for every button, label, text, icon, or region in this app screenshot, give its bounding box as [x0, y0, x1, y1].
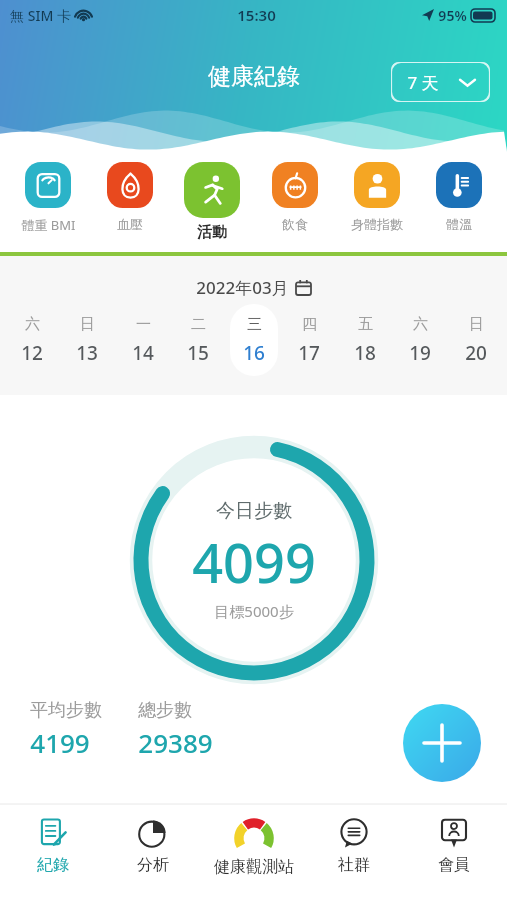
staticText: 日 — [469, 315, 484, 334]
staticText: 7 天 — [407, 71, 439, 94]
button[interactable]: 會員 — [407, 818, 501, 875]
button[interactable]: 六 — [8, 304, 56, 376]
staticText: 15 — [187, 340, 209, 366]
button[interactable]: 體重 BMI — [8, 162, 88, 234]
button[interactable]: 血壓 — [90, 162, 170, 232]
staticText: 身體指數 — [351, 216, 403, 232]
button[interactable]: 三 — [230, 304, 278, 376]
button[interactable]: 一 — [119, 304, 167, 376]
button[interactable]: 日 — [63, 304, 111, 376]
staticText: 體重 BMI — [21, 216, 76, 234]
staticText: 飲食 — [282, 216, 308, 232]
staticText: 16 — [243, 340, 265, 366]
button[interactable]: 7 天 — [391, 62, 490, 102]
button[interactable]: 六 — [396, 304, 444, 376]
button[interactable]: 日 — [452, 304, 500, 376]
staticText: 12 — [21, 340, 43, 366]
staticText: 三 — [247, 315, 262, 334]
button[interactable]: 社群 — [307, 818, 401, 875]
staticText: 活動 — [197, 223, 227, 242]
staticText: 17 — [298, 340, 320, 366]
staticText: 紀錄 — [37, 855, 69, 875]
staticText: 二 — [191, 315, 206, 334]
staticText: 4199 — [30, 725, 90, 760]
button[interactable]: 健康觀測站 — [207, 818, 301, 877]
staticText: 14 — [132, 340, 154, 366]
staticText: 健康紀錄 — [208, 62, 300, 91]
staticText: 4099 — [192, 525, 316, 599]
staticText: 13 — [76, 340, 98, 366]
staticText: 體溫 — [446, 216, 472, 232]
staticText: 分析 — [137, 855, 169, 875]
staticText: 六 — [413, 315, 428, 334]
staticText: 無 SIM 卡 — [10, 6, 71, 25]
staticText: 一 — [136, 315, 151, 334]
staticText: 20 — [465, 340, 487, 366]
button[interactable]: 體溫 — [419, 162, 499, 232]
button[interactable]: 分析 — [106, 818, 200, 875]
button[interactable]: 飲食 — [255, 162, 335, 232]
staticText: 六 — [25, 315, 40, 334]
staticText: 總步數 — [138, 699, 192, 722]
button[interactable]: Add record — [403, 704, 481, 782]
button[interactable]: 紀錄 — [6, 818, 100, 875]
staticText: 29389 — [138, 725, 213, 760]
staticText: 目標5000步 — [214, 601, 294, 621]
staticText: 19 — [409, 340, 431, 366]
staticText: 平均步數 — [30, 699, 102, 722]
staticText: 四 — [302, 315, 317, 334]
staticText: 會員 — [438, 855, 470, 875]
button[interactable]: 二 — [174, 304, 222, 376]
button[interactable]: Calendar — [296, 280, 311, 295]
staticText: 15:30 — [237, 5, 276, 25]
staticText: 今日步數 — [216, 499, 292, 523]
staticText: 日 — [80, 315, 95, 334]
staticText: 18 — [354, 340, 376, 366]
staticText: 2022年03月 — [196, 276, 289, 299]
staticText: 血壓 — [117, 216, 143, 232]
staticText: 社群 — [338, 855, 370, 875]
button[interactable]: 五 — [341, 304, 389, 376]
button[interactable]: 身體指數 — [337, 162, 417, 232]
button[interactable]: 活動 — [172, 162, 252, 242]
staticText: 五 — [358, 315, 373, 334]
button[interactable]: 四 — [285, 304, 333, 376]
staticText: 健康觀測站 — [214, 857, 294, 877]
staticText: 95% — [438, 6, 467, 25]
